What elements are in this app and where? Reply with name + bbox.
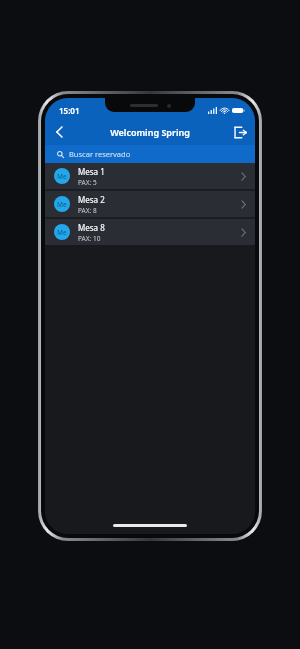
button[interactable]: Me: [45, 163, 255, 189]
button[interactable]: Me: [45, 219, 255, 245]
button[interactable]: Back: [45, 119, 73, 145]
button[interactable]: Log out: [225, 119, 255, 145]
staticText: Me: [57, 172, 67, 181]
staticText: Me: [57, 228, 67, 237]
staticText: Welcoming Spring: [110, 126, 190, 138]
staticText: Me: [57, 200, 67, 209]
staticText: PAX: 8: [78, 206, 97, 215]
staticText: 15:01: [59, 105, 80, 116]
staticText: Buscar reservado: [69, 149, 131, 159]
staticText: Mesa 1: [78, 166, 105, 177]
staticText: Mesa 2: [78, 194, 105, 205]
staticText: PAX: 10: [78, 234, 101, 243]
button[interactable]: Me: [45, 191, 255, 217]
staticText: Mesa 8: [78, 222, 105, 233]
button[interactable]: Buscar reservado: [45, 145, 255, 163]
staticText: PAX: 5: [78, 178, 97, 187]
